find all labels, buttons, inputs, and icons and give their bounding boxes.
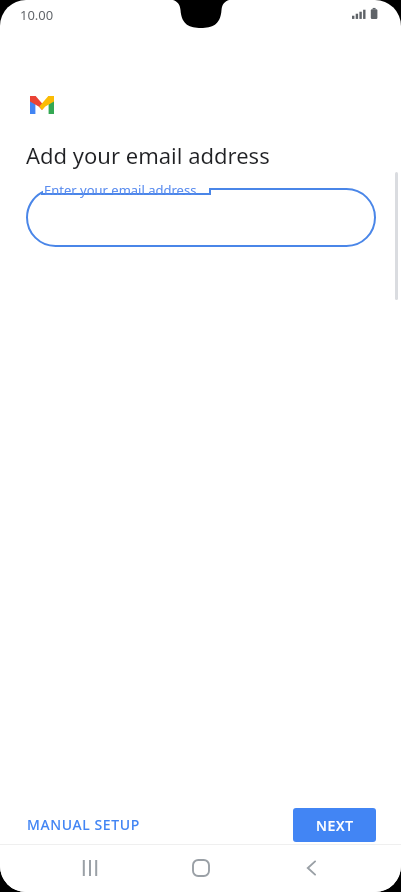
staticText: Enter your email address: [44, 181, 197, 199]
button[interactable]: Back: [287, 844, 335, 892]
button[interactable]: Recent apps: [66, 844, 114, 892]
button[interactable]: Home: [177, 844, 225, 892]
staticText: NEXT: [316, 816, 354, 835]
staticText: MANUAL SETUP: [27, 815, 140, 834]
staticText: 10.00: [20, 6, 54, 24]
button[interactable]: NEXT: [293, 808, 376, 842]
button[interactable]: Enter your email address: [26, 188, 376, 247]
staticText: Add your email address: [26, 140, 270, 170]
button[interactable]: MANUAL SETUP: [14, 805, 153, 844]
